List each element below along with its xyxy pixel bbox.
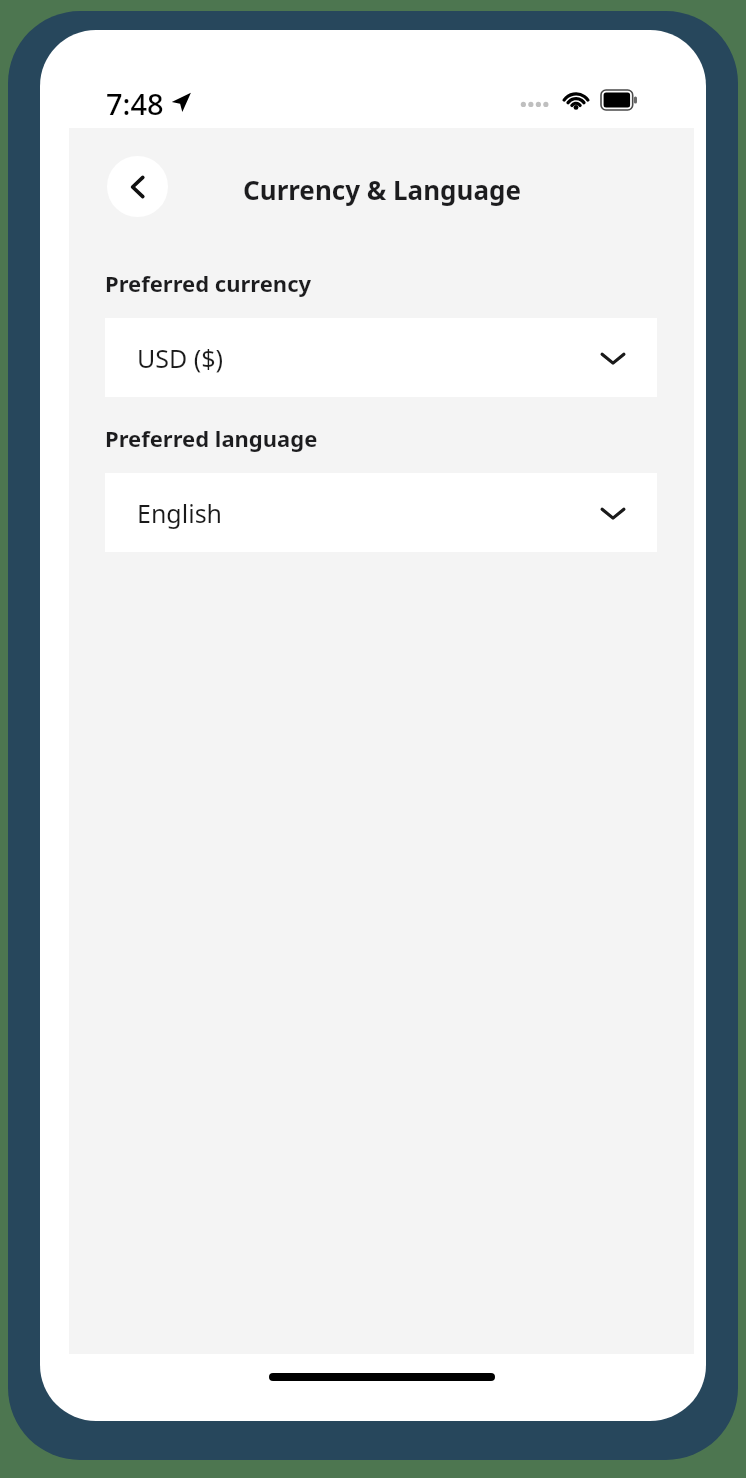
staticText: 7:48 — [106, 84, 164, 123]
button[interactable]: Back — [107, 156, 168, 217]
staticText: USD ($) — [137, 341, 224, 375]
staticText: Preferred language — [105, 423, 318, 453]
button[interactable]: English — [105, 473, 657, 552]
staticText: Currency & Language — [243, 172, 521, 207]
staticText: English — [137, 496, 223, 530]
button[interactable]: USD ($) — [105, 318, 657, 397]
staticText: Preferred currency — [105, 268, 312, 298]
